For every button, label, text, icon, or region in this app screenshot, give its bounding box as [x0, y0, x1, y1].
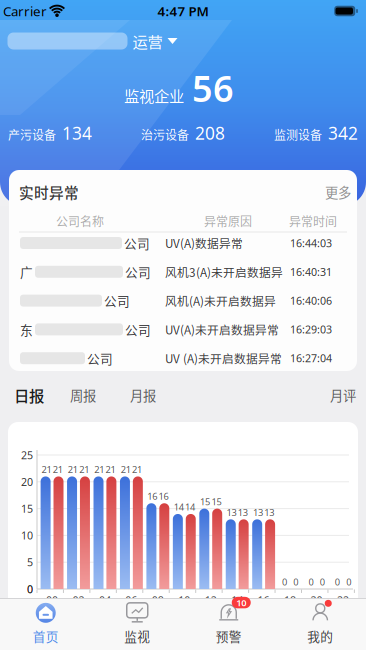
staticText: Carrier [3, 2, 47, 20]
staticText: 56 [192, 64, 234, 112]
staticText: UV (A)未开启数据异常 [165, 350, 282, 367]
staticText: 东 [20, 320, 33, 338]
staticText: 21 [121, 463, 131, 476]
button[interactable]: 10 [184, 599, 274, 649]
staticText: 16 [258, 593, 270, 607]
staticText: 13 [264, 506, 274, 518]
staticText: 风机3(A)未开启数据异 [165, 263, 283, 280]
staticText: 公司 [124, 234, 150, 252]
staticText: 风机(A)未开启数据异 [165, 292, 276, 309]
staticText: 16 [147, 490, 157, 502]
staticText: 0 [282, 576, 287, 588]
staticText: 21 [41, 463, 51, 476]
staticText: UV(A)数据异常 [165, 234, 243, 251]
staticText: 06 [125, 593, 137, 607]
staticText: 16:40:06 [290, 293, 332, 308]
staticText: 16:40:31 [290, 265, 332, 279]
staticText: 00 [46, 593, 58, 607]
staticText: 实时异常 [19, 181, 79, 203]
staticText: 首页 [33, 627, 59, 645]
staticText: 08 [152, 593, 164, 607]
staticText: 我的 [307, 627, 333, 645]
staticText: 208 [195, 121, 225, 144]
button[interactable]: 东 [9, 315, 357, 344]
staticText: 10 [178, 593, 190, 607]
staticText: 21 [53, 463, 63, 476]
staticText: 0 [346, 576, 351, 588]
staticText: 周报 [70, 385, 96, 405]
button[interactable]: 监视 [92, 599, 182, 649]
staticText: 监视企业 [124, 84, 184, 106]
button[interactable]: 广 [9, 257, 357, 286]
staticText: 21 [79, 463, 89, 476]
staticText: 公司 [125, 263, 151, 281]
staticText: 公司名称 [56, 212, 104, 230]
staticText: 15 [21, 501, 33, 516]
staticText: 10 [21, 528, 33, 542]
staticText: 13 [227, 506, 237, 518]
staticText: 25 [21, 448, 33, 462]
button[interactable]: 周报 [70, 385, 96, 405]
staticText: 16:29:03 [290, 322, 332, 336]
staticText: 12 [205, 593, 217, 607]
staticText: 04 [99, 593, 111, 607]
staticText: 18 [284, 593, 296, 607]
staticText: UV(A)未开启数据异常 [165, 321, 279, 338]
button[interactable]: 更多 [325, 182, 351, 202]
button[interactable]: 我的 [275, 599, 365, 649]
staticText: 10 [236, 596, 246, 609]
staticText: 月报 [130, 385, 156, 405]
button[interactable]: 公司 [9, 229, 357, 257]
staticText: 预警 [216, 627, 242, 645]
button[interactable]: 月报 [130, 385, 156, 405]
staticText: 15 [200, 495, 210, 508]
staticText: 0 [308, 576, 313, 588]
staticText: 20 [21, 475, 33, 489]
staticText: 20 [310, 593, 322, 607]
staticText: 监测设备 [274, 126, 322, 143]
staticText: 0 [293, 576, 298, 588]
staticText: 广 [20, 263, 33, 281]
staticText: 16 [158, 490, 168, 502]
staticText: 21 [106, 463, 116, 476]
staticText: 月评 [330, 385, 356, 405]
staticText: 13 [238, 506, 248, 518]
staticText: 0 [27, 582, 33, 596]
button[interactable]: 公司 [9, 344, 357, 373]
staticText: 公司 [87, 349, 113, 367]
button[interactable]: 公司 [9, 286, 357, 315]
staticText: 14 [231, 593, 243, 607]
staticText: 0 [320, 576, 325, 588]
staticText: 14 [185, 501, 195, 513]
staticText: 运营 [132, 30, 162, 52]
staticText: 21 [94, 463, 104, 476]
staticText: 15 [211, 495, 221, 508]
staticText: 4:47 PM [157, 2, 208, 20]
staticText: 异常原因 [204, 212, 252, 230]
staticText: 异常时间 [289, 212, 337, 230]
staticText: 13 [253, 506, 263, 518]
staticText: 公司 [104, 291, 130, 310]
staticText: 0 [335, 576, 340, 588]
staticText: 监视 [124, 627, 150, 645]
staticText: 5 [27, 555, 33, 569]
button[interactable]: 日报 [14, 384, 44, 406]
staticText: 21 [132, 463, 142, 476]
staticText: 产污设备 [8, 126, 56, 143]
staticText: 0 [27, 582, 33, 596]
staticText: 134 [62, 121, 92, 144]
staticText: 02 [72, 593, 84, 607]
staticText: 日报 [14, 384, 44, 406]
staticText: 16:27:04 [290, 351, 332, 365]
staticText: 公司 [125, 320, 151, 338]
staticText: 22 [337, 593, 349, 607]
staticText: 14 [174, 501, 184, 513]
staticText: 342 [328, 121, 358, 144]
staticText: 21 [68, 463, 78, 476]
button[interactable]: 运营 [7, 30, 177, 52]
staticText: 16:44:03 [290, 236, 332, 250]
staticText: 更多 [325, 182, 351, 202]
button[interactable]: 月评 [330, 385, 356, 405]
staticText: 治污设备 [141, 126, 189, 143]
button[interactable]: 首页 [1, 599, 91, 649]
